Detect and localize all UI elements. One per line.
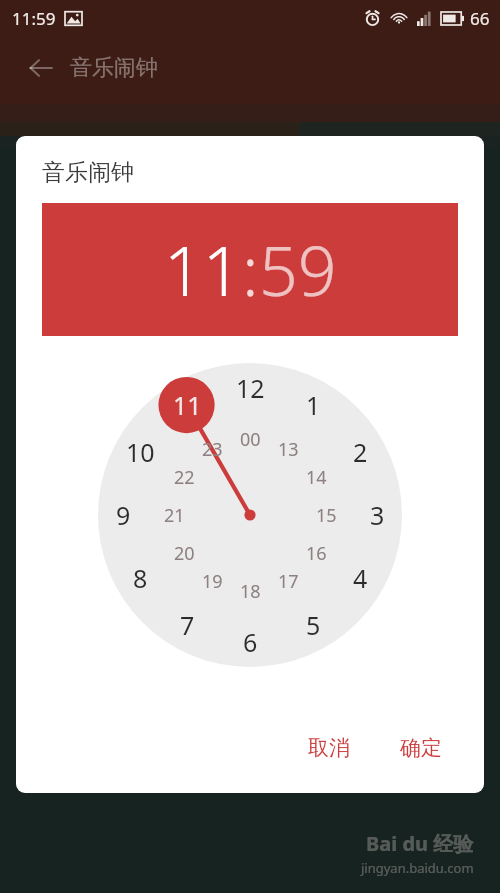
button[interactable]: 9: [103, 495, 143, 535]
staticText: 18: [240, 579, 261, 604]
button[interactable]: 16: [296, 533, 336, 573]
staticText: 5: [306, 608, 321, 642]
staticText: 10: [126, 435, 155, 469]
staticText: 2: [353, 435, 368, 469]
staticText: 8: [133, 561, 148, 595]
button[interactable]: 10: [120, 432, 160, 472]
button[interactable]: 3: [357, 495, 397, 535]
button[interactable]: 19: [192, 561, 232, 601]
button[interactable]: 15: [306, 495, 346, 535]
staticText: 13: [278, 437, 299, 462]
staticText: 3: [370, 498, 385, 532]
button[interactable]: Back: [26, 53, 56, 83]
staticText: 9: [116, 498, 131, 532]
button[interactable]: 8: [120, 558, 160, 598]
staticText: 66: [470, 7, 490, 30]
button[interactable]: 20: [164, 533, 204, 573]
staticText: 1: [306, 388, 321, 422]
staticText: 4: [353, 561, 368, 595]
button[interactable]: 7: [167, 605, 207, 645]
staticText: 19: [202, 569, 223, 594]
button[interactable]: 17: [268, 561, 308, 601]
button[interactable]: 1: [293, 385, 333, 425]
staticText: 22: [174, 465, 195, 490]
button[interactable]: 11: [167, 385, 207, 425]
button[interactable]: 21: [154, 495, 194, 535]
button[interactable]: 确定: [388, 727, 454, 769]
button[interactable]: 4: [340, 558, 380, 598]
staticText: 23: [202, 437, 223, 462]
staticText: 20: [174, 541, 195, 566]
staticText: 取消: [308, 735, 350, 761]
staticText: 16: [306, 541, 327, 566]
button[interactable]: 取消: [296, 727, 362, 769]
staticText: 00: [240, 427, 261, 452]
button[interactable]: 59: [259, 223, 337, 316]
button[interactable]: 22: [164, 457, 204, 497]
staticText: 15: [316, 503, 337, 528]
staticText: 音乐闹钟: [70, 54, 158, 82]
staticText: 14: [306, 465, 327, 490]
button[interactable]: 23: [192, 429, 232, 469]
staticText: 17: [278, 569, 299, 594]
button[interactable]: 6: [230, 622, 270, 662]
staticText: Bai du 经验: [366, 830, 474, 857]
button[interactable]: 13: [268, 429, 308, 469]
button[interactable]: 11: [164, 223, 242, 316]
button[interactable]: 18: [230, 571, 270, 611]
button[interactable]: 5: [293, 605, 333, 645]
staticText: 21: [164, 503, 185, 528]
staticText: 11: [173, 388, 202, 422]
button[interactable]: 2: [340, 432, 380, 472]
button[interactable]: 14: [296, 457, 336, 497]
staticText: 音乐闹钟: [42, 158, 134, 187]
staticText: 6: [243, 625, 258, 659]
staticText: 12: [236, 371, 265, 405]
button[interactable]: 00: [230, 419, 270, 459]
staticText: 确定: [400, 735, 442, 761]
button[interactable]: 12: [230, 368, 270, 408]
staticText: 11:59: [12, 7, 56, 30]
staticText: 7: [180, 608, 195, 642]
staticText: jingyan.baidu.com: [361, 859, 474, 877]
staticText: :: [242, 223, 259, 316]
